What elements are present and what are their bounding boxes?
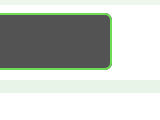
button[interactable]: Selected item xyxy=(0,13,112,70)
